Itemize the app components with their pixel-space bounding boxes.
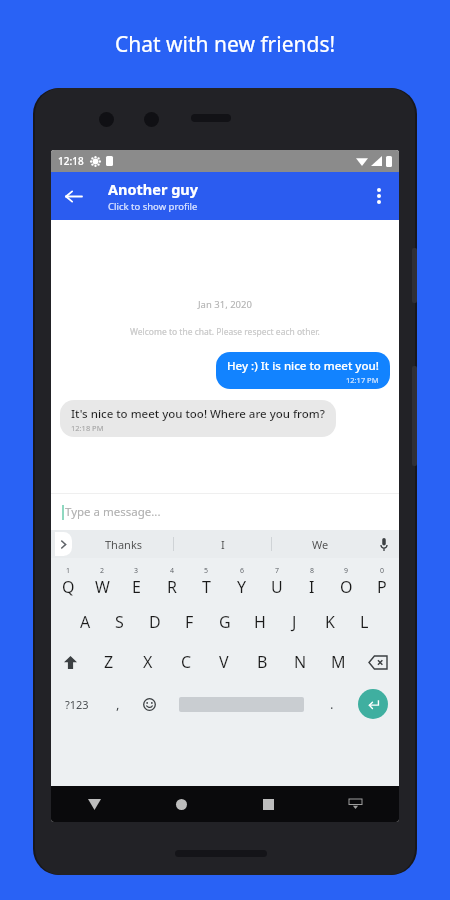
staticText: G (219, 611, 231, 633)
staticText: Jan 31, 2020 (198, 298, 252, 311)
button[interactable]: 4 (154, 562, 189, 602)
button[interactable]: Shift (51, 642, 89, 682)
button[interactable]: It's nice to meet you too! Where are you… (60, 400, 336, 437)
staticText: B (257, 651, 268, 673)
staticText: Y (237, 576, 247, 598)
button[interactable]: Expand suggestions (51, 530, 75, 558)
button[interactable]: . (317, 682, 347, 726)
button[interactable]: Another guy (108, 179, 199, 213)
button[interactable]: Home (138, 786, 225, 822)
staticText: H (254, 611, 266, 633)
staticText: 3 (134, 566, 139, 576)
button[interactable]: Emoji (133, 682, 165, 726)
button[interactable]: V (205, 642, 243, 682)
staticText: It's nice to meet you too! Where are you… (71, 406, 325, 422)
staticText: P (377, 576, 387, 598)
staticText: D (149, 611, 161, 633)
button[interactable]: H (242, 602, 277, 642)
button[interactable]: J (277, 602, 312, 642)
staticText: . (330, 695, 334, 713)
button[interactable]: 6 (224, 562, 259, 602)
button[interactable]: K (312, 602, 347, 642)
button[interactable]: D (137, 602, 172, 642)
button[interactable]: Back (51, 174, 95, 218)
staticText: V (219, 651, 229, 673)
button[interactable]: 9 (329, 562, 364, 602)
button[interactable]: C (167, 642, 205, 682)
staticText: , (116, 695, 120, 713)
button[interactable]: A (68, 602, 102, 642)
button[interactable]: X (128, 642, 167, 682)
button[interactable]: N (281, 642, 319, 682)
button[interactable]: Type a message... (51, 493, 399, 530)
button[interactable]: ?123 (51, 682, 103, 726)
staticText: 12:18 PM (71, 423, 104, 433)
staticText: 9 (344, 566, 349, 576)
button[interactable]: , (103, 682, 133, 726)
staticText: S (115, 611, 124, 633)
staticText: F (185, 611, 194, 633)
staticText: L (360, 611, 369, 633)
button[interactable]: Recents (225, 786, 312, 822)
button[interactable]: 7 (259, 562, 294, 602)
button[interactable]: G (207, 602, 242, 642)
staticText: Type a message... (65, 504, 161, 520)
button[interactable]: 2 (85, 562, 119, 602)
button[interactable]: S (102, 602, 137, 642)
staticText: X (143, 651, 153, 673)
staticText: 0 (380, 566, 385, 576)
button[interactable]: We (272, 530, 369, 558)
staticText: W (95, 576, 110, 598)
button[interactable]: Send (347, 682, 399, 726)
staticText: Chat with new friends! (115, 30, 336, 59)
staticText: U (271, 576, 283, 598)
staticText: Q (62, 576, 75, 598)
button[interactable]: 3 (119, 562, 154, 602)
staticText: Click to show profile (108, 200, 198, 213)
staticText: 4 (170, 566, 175, 576)
staticText: 12:18 (58, 154, 84, 168)
staticText: We (312, 537, 329, 552)
staticText: N (294, 651, 307, 673)
button[interactable]: B (243, 642, 281, 682)
staticText: J (292, 611, 297, 633)
staticText: A (80, 611, 91, 633)
staticText: 6 (240, 566, 245, 576)
button[interactable]: L (347, 602, 382, 642)
button[interactable] (165, 682, 317, 726)
button[interactable]: Switch keyboard (312, 786, 399, 822)
staticText: M (331, 651, 346, 673)
button[interactable]: Thanks (75, 530, 173, 558)
button[interactable]: 8 (294, 562, 329, 602)
button[interactable]: 0 (364, 562, 399, 602)
button[interactable]: 1 (51, 562, 85, 602)
staticText: T (202, 576, 211, 598)
button[interactable]: Backspace (357, 642, 399, 682)
staticText: I (309, 576, 315, 598)
button[interactable]: Hey :) It is nice to meet you! (216, 352, 390, 389)
staticText: C (181, 651, 192, 673)
staticText: 2 (100, 566, 105, 576)
staticText: Welcome to the chat. Please respect each… (130, 326, 320, 338)
staticText: 7 (275, 566, 280, 576)
button[interactable]: F (172, 602, 207, 642)
button[interactable]: M (319, 642, 357, 682)
button[interactable]: I (174, 530, 271, 558)
staticText: 1 (66, 566, 71, 576)
staticText: ?123 (65, 697, 89, 712)
staticText: R (167, 576, 177, 598)
staticText: K (325, 611, 335, 633)
button[interactable]: More options (359, 176, 399, 216)
button[interactable]: Back (51, 786, 138, 822)
staticText: 12:17 PM (346, 375, 379, 385)
staticText: O (340, 576, 353, 598)
staticText: 8 (310, 566, 315, 576)
staticText: Z (104, 651, 114, 673)
staticText: Thanks (105, 537, 143, 552)
staticText: E (132, 576, 141, 598)
button[interactable]: 5 (189, 562, 224, 602)
staticText: I (221, 537, 225, 552)
button[interactable]: Voice input (369, 530, 399, 558)
staticText: Another guy (108, 179, 199, 199)
button[interactable]: Z (89, 642, 128, 682)
